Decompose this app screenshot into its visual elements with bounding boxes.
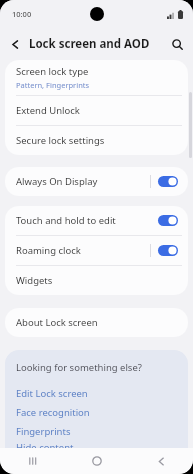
button[interactable]: About Lock screen [5,308,188,337]
staticText: 10:00 [12,9,32,19]
staticText: Secure lock settings [16,134,105,147]
button[interactable]: Screen lock type [5,60,188,95]
other: Toggle on [158,176,178,187]
staticText: Edit Lock screen [16,387,88,400]
button[interactable]: Secure lock settings [5,126,188,155]
button[interactable]: Back [129,448,193,474]
staticText: Face recognition [16,406,90,419]
button[interactable]: Widgets [5,266,188,295]
button[interactable]: Face recognition [5,403,188,422]
button[interactable]: Fingerprints [5,422,188,441]
button[interactable]: Always On Display [5,167,188,196]
staticText: Touch and hold to edit [16,214,158,227]
button[interactable]: Touch and hold to edit [5,206,188,235]
button[interactable]: Hide content [5,441,188,448]
button[interactable]: Search [166,33,188,55]
other: Toggle on [158,245,178,256]
staticText: Screen lock type [16,65,89,78]
staticText: Fingerprints [16,425,71,438]
staticText: Extend Unlock [16,104,80,117]
staticText: Hide content [16,441,74,448]
staticText: Always On Display [16,175,150,188]
button[interactable]: Home [65,448,129,474]
button[interactable]: Recent apps [0,448,65,474]
button[interactable]: Roaming clock [5,236,188,265]
staticText: Widgets [16,274,53,287]
button[interactable]: Back [4,33,26,55]
button[interactable]: Extend Unlock [5,96,188,125]
staticText: Pattern, Fingerprints [16,80,90,90]
staticText: About Lock screen [16,316,98,329]
button[interactable]: Edit Lock screen [5,384,188,403]
staticText: Roaming clock [16,244,150,257]
staticText: Looking for something else? [16,361,142,374]
other: Toggle on [158,215,178,226]
staticText: Lock screen and AOD [29,36,150,52]
